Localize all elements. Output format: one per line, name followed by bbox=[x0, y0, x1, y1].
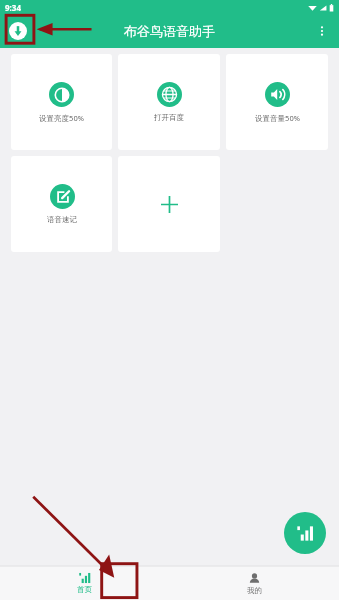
button[interactable]: 语音助手 bbox=[284, 512, 326, 554]
staticText: 首页 bbox=[77, 585, 92, 594]
staticText: 语音速记 bbox=[47, 215, 77, 224]
staticText: 我的 bbox=[247, 586, 262, 595]
staticText: 设置亮度50% bbox=[39, 113, 84, 123]
button[interactable]: 打开百度 bbox=[118, 54, 220, 150]
button[interactable]: 语音速记 bbox=[11, 156, 112, 252]
staticText: 9:34 bbox=[5, 2, 21, 13]
staticText: 打开百度 bbox=[154, 113, 184, 122]
button[interactable]: More options bbox=[310, 19, 334, 43]
staticText: 布谷鸟语音助手 bbox=[124, 23, 215, 39]
button[interactable]: 设置音量50% bbox=[226, 54, 328, 150]
button[interactable]: Add bbox=[118, 156, 220, 252]
staticText: 设置音量50% bbox=[255, 113, 300, 123]
button[interactable]: 首页 bbox=[0, 566, 169, 600]
button[interactable]: 我的 bbox=[169, 566, 339, 600]
button[interactable]: 设置亮度50% bbox=[11, 54, 112, 150]
button[interactable]: Download bbox=[6, 19, 30, 43]
